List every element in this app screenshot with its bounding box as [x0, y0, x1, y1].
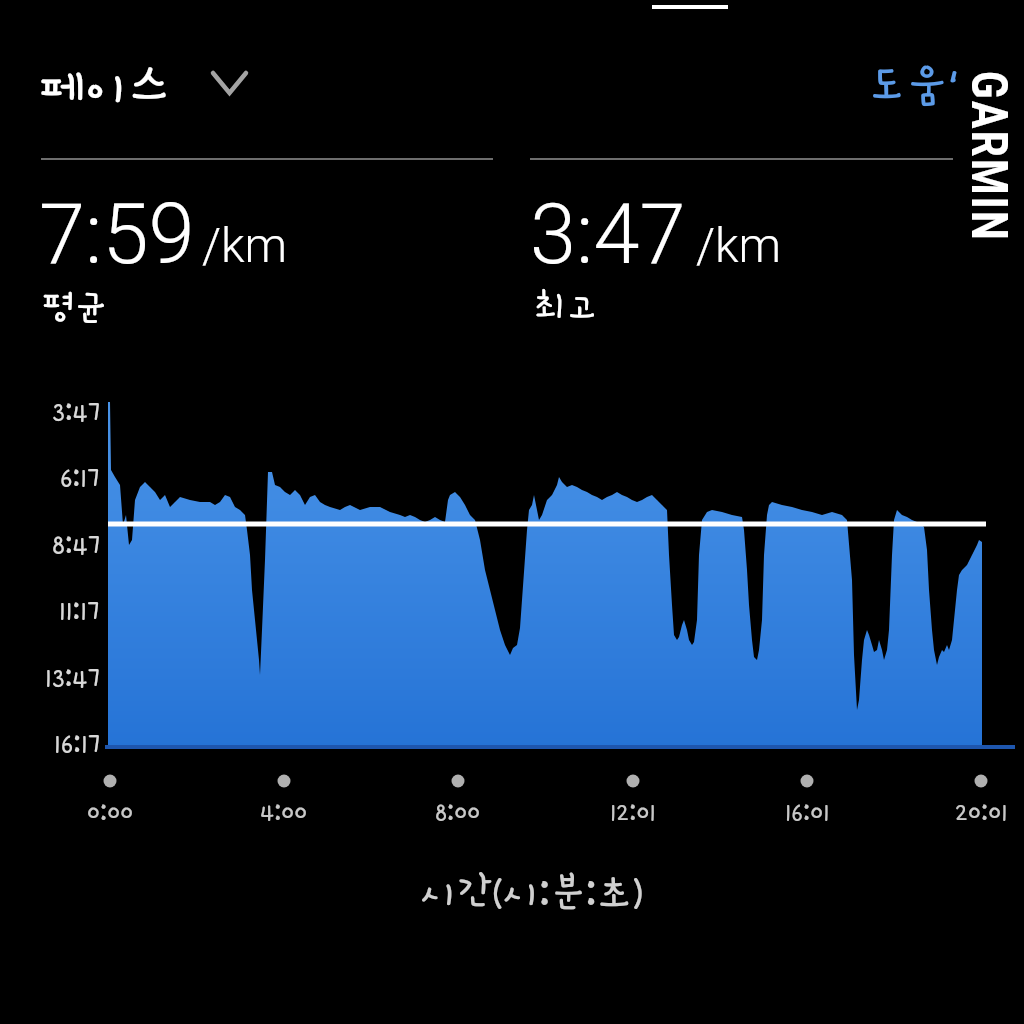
staticText: 4:00	[260, 798, 308, 826]
staticText: 20:01	[955, 798, 1008, 826]
button[interactable]	[30, 50, 260, 110]
staticText: 16:17	[54, 729, 100, 759]
staticText: 3:47	[530, 186, 686, 283]
staticText: 8:47	[52, 530, 100, 560]
staticText: 평균	[42, 288, 107, 328]
staticText: 페이스	[39, 59, 172, 114]
staticText: 13:47	[45, 663, 100, 693]
staticText: 시간(시:분:초)	[421, 871, 644, 915]
staticText: 0:00	[87, 798, 134, 826]
staticText: /km	[202, 217, 288, 273]
staticText: 6:17	[60, 463, 100, 493]
staticText: 12:01	[610, 798, 656, 826]
staticText: 최고	[534, 288, 599, 328]
button[interactable]: 도움'	[856, 52, 971, 118]
staticText: /km	[696, 217, 782, 273]
staticText: 16:01	[785, 798, 830, 826]
staticText: 8:00	[435, 798, 481, 826]
staticText: 11:17	[59, 596, 100, 626]
staticText: 도움'	[867, 60, 960, 110]
staticText: GARMIN.	[969, 71, 1018, 252]
staticText: 7:59	[39, 186, 195, 283]
staticText: 3:47	[52, 397, 100, 427]
